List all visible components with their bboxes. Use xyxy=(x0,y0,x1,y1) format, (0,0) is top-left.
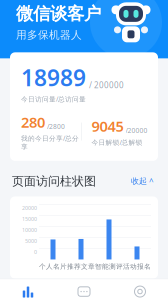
staticText: 0 xyxy=(34,248,37,256)
button[interactable]: 消息 xyxy=(56,284,112,300)
staticText: 10000 xyxy=(22,226,37,234)
staticText: / 200000 xyxy=(89,80,124,90)
staticText: 18989 xyxy=(21,62,86,92)
staticText: 用多保机器人 xyxy=(16,28,82,41)
staticText: 280 xyxy=(21,112,45,132)
staticText: /20000 xyxy=(125,126,147,135)
staticText: 我的今日分享/总分享 xyxy=(21,134,79,151)
staticText: 推荐文章 xyxy=(67,262,95,271)
button[interactable]: 统计 xyxy=(0,284,56,300)
staticText: 活动报名 xyxy=(123,262,151,271)
staticText: 个人名片 xyxy=(39,262,67,271)
staticText: 20000 xyxy=(22,204,37,212)
staticText: 5000 xyxy=(25,237,37,245)
staticText: 今日解锁/总解锁 xyxy=(91,138,142,147)
staticText: 15000 xyxy=(22,215,37,223)
button[interactable]: 设置 xyxy=(112,284,168,300)
button[interactable]: 收起 xyxy=(129,173,156,189)
staticText: /2800 xyxy=(47,122,65,131)
staticText: ^ xyxy=(149,176,154,186)
staticText: 今日访问量/总访问量 xyxy=(21,94,86,103)
staticText: 页面访问柱状图 xyxy=(12,174,96,188)
staticText: 微信谈客户 xyxy=(16,3,101,24)
staticText: 收起 xyxy=(131,176,147,186)
staticText: 9045 xyxy=(91,116,123,136)
staticText: 智能测评 xyxy=(95,262,123,271)
